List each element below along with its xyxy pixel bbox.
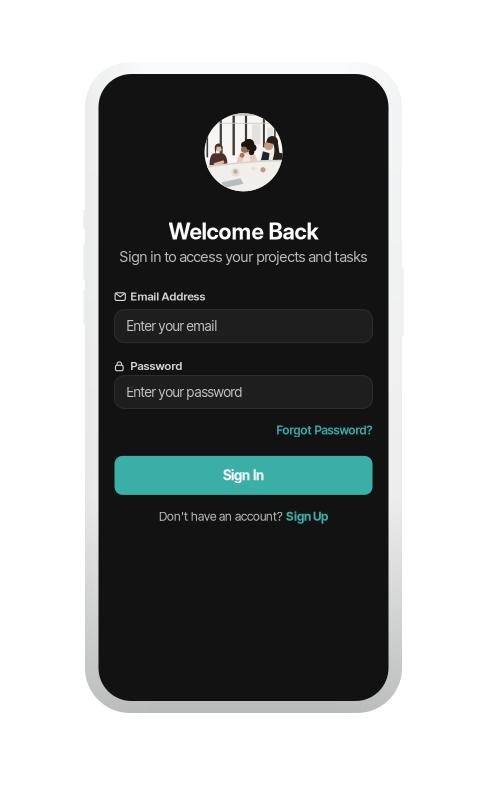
button[interactable]: Forgot Password? [276,423,372,437]
button[interactable]: Enter your password [114,375,372,408]
button[interactable]: Sign In [114,456,372,495]
button[interactable]: Sign Up [286,509,328,524]
staticText: Sign Up [286,509,328,524]
staticText: Sign in to access your projects and task… [119,248,367,265]
staticText: Forgot Password? [276,423,372,437]
staticText: Don't have an account? [159,509,286,524]
button[interactable]: Enter your email [114,310,372,343]
staticText: Password [130,359,182,373]
staticText: Enter your email [126,318,217,334]
staticText: Enter your password [126,384,242,400]
staticText: Email Address [130,289,205,303]
staticText: Sign In [223,467,264,484]
staticText: Welcome Back [168,218,318,245]
